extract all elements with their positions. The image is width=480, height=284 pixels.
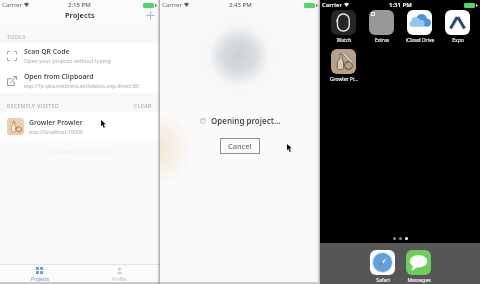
button[interactable] <box>331 49 356 83</box>
button[interactable]: Open from Clipboard <box>0 68 159 93</box>
staticText: Carrier <box>2 1 22 9</box>
staticText: Scan QR Code <box>24 47 70 56</box>
button[interactable] <box>370 250 395 284</box>
staticText: Growler Pr... <box>320 76 368 83</box>
staticText: Carrier <box>162 1 182 9</box>
button[interactable]: Growler Prowler <box>0 112 159 140</box>
staticText: Profile <box>112 276 127 282</box>
staticText: Expo <box>434 37 480 44</box>
button[interactable]: Scan QR Code <box>0 43 159 68</box>
staticText: 2:43 PM <box>229 1 252 9</box>
button[interactable]: Profile <box>79 265 159 282</box>
staticText: Messages <box>395 277 443 284</box>
button[interactable]: Add project <box>144 9 157 22</box>
button[interactable]: CLEAR <box>134 102 152 109</box>
button[interactable] <box>369 10 394 44</box>
staticText: exp://localhost:19000 <box>29 128 84 135</box>
staticText: iCloud Drive <box>396 37 444 44</box>
staticText: Watch <box>320 37 368 44</box>
button[interactable] <box>331 10 356 44</box>
button[interactable] <box>407 10 432 44</box>
staticText: 2:15 PM <box>68 1 91 9</box>
staticText: Opening project... <box>211 115 281 126</box>
staticText: Projects <box>31 276 49 282</box>
staticText: Safari <box>359 277 407 284</box>
button[interactable] <box>406 250 431 284</box>
button[interactable] <box>445 10 470 44</box>
button[interactable]: Cancel <box>220 138 260 154</box>
staticText: RECENTLY VISITED <box>7 102 60 109</box>
staticText: Extras <box>358 37 406 44</box>
staticText: Growler Prowler <box>29 118 83 127</box>
staticText: Open from Clipboard <box>24 72 94 81</box>
staticText: Open your projects without typing <box>24 57 111 64</box>
staticText: Projects <box>65 10 95 20</box>
staticText: Cancel <box>228 141 252 151</box>
button[interactable]: Projects <box>0 265 79 282</box>
staticText: exp://fp-pka.notbrent.withdetox.exp.dire… <box>24 82 140 89</box>
staticText: 1:31 PM <box>389 1 412 9</box>
staticText: TOOLS <box>7 33 26 40</box>
staticText: Carrier <box>322 1 342 9</box>
